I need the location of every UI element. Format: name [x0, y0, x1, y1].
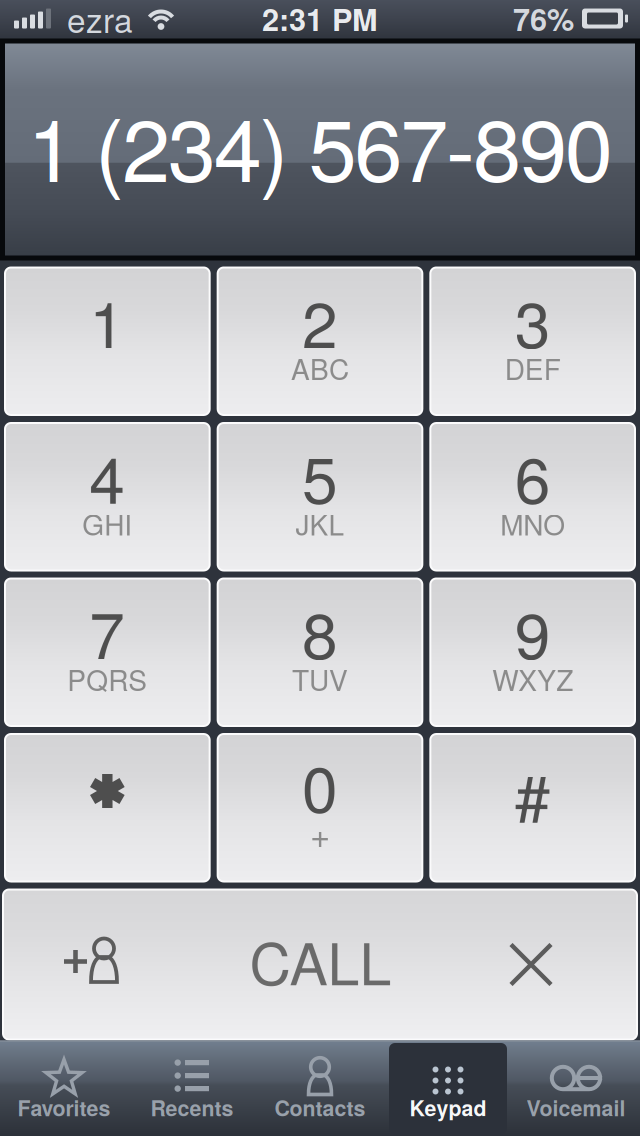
staticText: 7: [89, 586, 125, 677]
staticText: DEF: [505, 348, 561, 388]
button[interactable]: Recents: [128, 1040, 256, 1136]
button[interactable]: 3: [429, 266, 636, 416]
staticText: 3: [515, 275, 551, 366]
button[interactable]: [4, 733, 211, 882]
staticText: 1: [89, 275, 125, 366]
staticText: Keypad: [409, 1092, 486, 1123]
staticText: Favorites: [17, 1092, 110, 1123]
button[interactable]: Voicemail: [512, 1040, 640, 1136]
button[interactable]: Keypad: [384, 1040, 512, 1136]
staticText: 1 (234) 567-890: [27, 82, 613, 206]
staticText: WXYZ: [492, 659, 573, 699]
button[interactable]: Contacts: [256, 1040, 384, 1136]
button[interactable]: 2: [217, 266, 423, 416]
button[interactable]: 6: [429, 422, 636, 571]
staticText: GHI: [82, 503, 132, 544]
button[interactable]: 7: [4, 577, 211, 727]
staticText: 6: [515, 430, 551, 522]
staticText: TUV: [292, 659, 348, 699]
staticText: 2: [302, 275, 338, 366]
staticText: 9: [515, 586, 551, 677]
staticText: Voicemail: [526, 1092, 625, 1123]
button[interactable]: Favorites: [0, 1040, 128, 1136]
staticText: 8: [302, 586, 338, 677]
staticText: Contacts: [274, 1092, 365, 1123]
staticText: 76%: [513, 0, 574, 40]
button[interactable]: 4: [4, 422, 211, 571]
button[interactable]: 5: [217, 422, 423, 571]
button[interactable]: 1: [4, 266, 211, 416]
staticText: ezra: [67, 0, 133, 42]
staticText: Recents: [150, 1092, 233, 1123]
staticText: 0: [302, 739, 338, 831]
button[interactable]: 0: [217, 733, 423, 882]
staticText: +: [310, 808, 330, 858]
button[interactable]: Add contact: [4, 890, 215, 1038]
button[interactable]: 8: [217, 577, 423, 727]
staticText: ABC: [291, 348, 349, 388]
staticText: PQRS: [67, 659, 147, 699]
button[interactable]: #: [429, 733, 636, 882]
staticText: MNO: [500, 503, 565, 544]
staticText: JKL: [295, 503, 344, 544]
staticText: 5: [302, 430, 338, 522]
staticText: 2:31 PM: [262, 0, 378, 40]
staticText: CALL: [249, 919, 391, 1001]
button[interactable]: Delete: [426, 890, 636, 1038]
staticText: 4: [89, 430, 125, 522]
staticText: #: [515, 748, 551, 840]
button[interactable]: 9: [429, 577, 636, 727]
button[interactable]: CALL: [215, 890, 426, 1038]
